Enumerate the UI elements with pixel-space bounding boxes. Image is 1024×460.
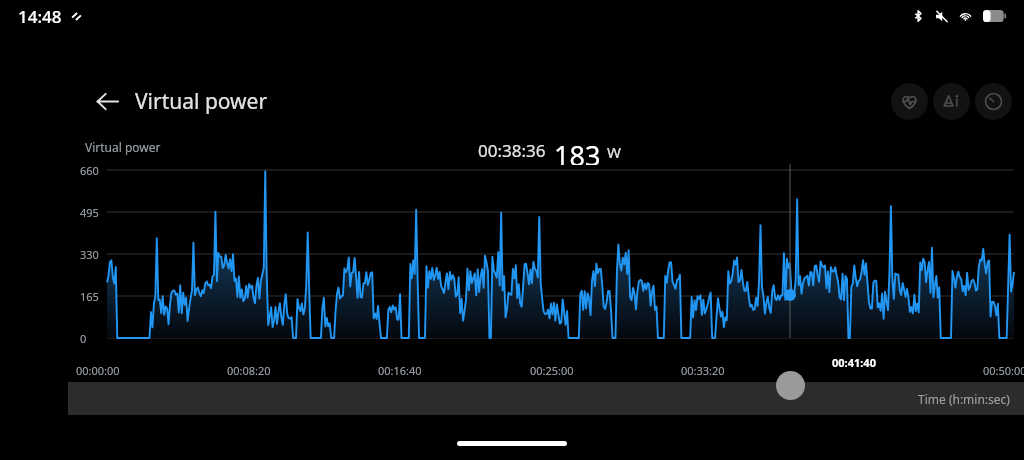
staticText: 00:16:40 (378, 363, 422, 378)
staticText: 00:08:20 (227, 363, 271, 378)
staticText: Time (h:min:sec) (918, 391, 1010, 407)
staticText: 495 (80, 205, 99, 220)
button[interactable]: Back (88, 82, 126, 120)
staticText: 00:50:00 (983, 363, 1024, 378)
button[interactable]: Scrub position (776, 371, 805, 400)
button[interactable]: Time (h:min:sec) (68, 382, 1024, 415)
staticText: 0 (80, 331, 87, 346)
button[interactable]: Speed (975, 83, 1012, 120)
staticText: 660 (80, 163, 99, 178)
button[interactable]: Altitude (933, 83, 970, 120)
staticText: 14:48 (18, 5, 62, 28)
staticText: W (607, 142, 621, 162)
staticText: Virtual power (85, 139, 161, 155)
staticText: 00:00:00 (76, 363, 120, 378)
staticText: 00:25:00 (530, 363, 574, 378)
staticText: 00:33:20 (681, 363, 725, 378)
staticText: 165 (80, 289, 99, 304)
staticText: 183 (554, 137, 601, 165)
staticText: 00:38:36 (478, 139, 546, 162)
button[interactable]: Heart rate (891, 83, 928, 120)
staticText: Virtual power (135, 87, 268, 116)
staticText: 330 (80, 247, 99, 262)
staticText: 00:41:40 (832, 355, 876, 370)
